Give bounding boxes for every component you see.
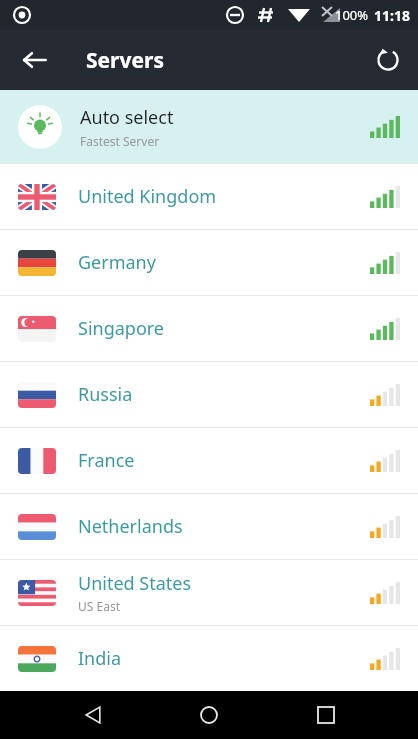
staticText: US East <box>78 598 120 614</box>
staticText: Servers <box>86 46 164 75</box>
button[interactable]: Germany <box>0 230 418 295</box>
button[interactable]: United Kingdom <box>0 164 418 229</box>
staticText: India <box>78 646 122 671</box>
button[interactable]: Back <box>69 691 117 739</box>
staticText: Fastest Server <box>80 133 160 149</box>
staticText: United Kingdom <box>78 184 217 209</box>
staticText: 100% <box>335 6 369 24</box>
button[interactable]: Home <box>185 691 233 739</box>
staticText: Singapore <box>78 316 165 341</box>
staticText: Russia <box>78 382 133 407</box>
staticText: Auto select <box>80 105 174 130</box>
button[interactable]: Netherlands <box>0 494 418 559</box>
button[interactable]: Auto select <box>0 90 418 163</box>
staticText: 11:18 <box>374 6 410 25</box>
button[interactable]: United States <box>0 560 418 625</box>
button[interactable]: Back <box>12 38 56 82</box>
staticText: Netherlands <box>78 514 183 539</box>
button[interactable]: Singapore <box>0 296 418 361</box>
button[interactable]: Refresh <box>366 38 410 82</box>
staticText: France <box>78 448 135 473</box>
button[interactable]: France <box>0 428 418 493</box>
staticText: United States <box>78 571 192 596</box>
staticText: Germany <box>78 250 156 275</box>
button[interactable]: Recents <box>302 691 350 739</box>
button[interactable]: Russia <box>0 362 418 427</box>
button[interactable]: India <box>0 626 418 691</box>
